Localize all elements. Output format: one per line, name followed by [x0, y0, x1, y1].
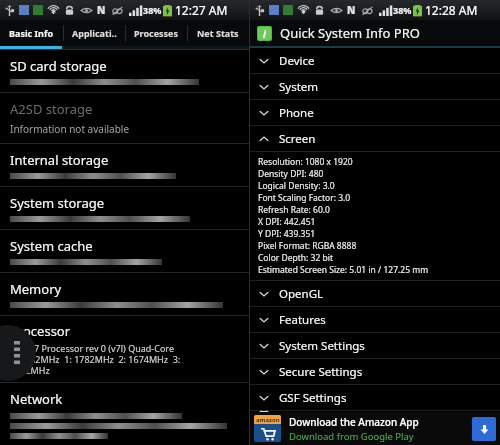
staticText: Color Depth: 32 bit [258, 252, 334, 264]
staticText: Device [279, 53, 315, 69]
staticText: i [263, 27, 266, 40]
button[interactable]: SD card storage [0, 50, 249, 92]
button[interactable]: System [250, 74, 500, 99]
button[interactable]: OpenGL [250, 281, 500, 306]
staticText: Features [279, 312, 326, 328]
button[interactable]: System Settings [250, 333, 500, 358]
staticText: Processes [134, 27, 179, 39]
staticText: ARMv7 Processor rev 0 (v7l) Quad-Core 0:… [10, 342, 181, 376]
button[interactable]: System storage [0, 187, 249, 229]
staticText: Applicati.. [72, 27, 117, 39]
staticText: 12:27 AM [175, 2, 228, 18]
staticText: 38% [393, 4, 412, 16]
button[interactable]: Basic Info [0, 20, 63, 46]
staticText: Phone [279, 105, 314, 121]
staticText: OpenGL [279, 286, 324, 302]
staticText: Memory [10, 280, 62, 298]
button[interactable]: Memory [0, 273, 249, 315]
staticText: A2SD storage [10, 100, 93, 118]
staticText: Screen [279, 131, 316, 147]
staticText: System storage [10, 194, 105, 212]
staticText: SD card storage [10, 57, 107, 75]
staticText: amazon [256, 416, 280, 424]
button[interactable]: amazon [250, 412, 500, 445]
staticText: 38% [143, 4, 162, 16]
staticText: Internal storage [10, 151, 109, 169]
button[interactable]: Secure Settings [250, 359, 500, 384]
button[interactable]: Screen [250, 126, 500, 151]
staticText: System Settings [279, 338, 365, 354]
button[interactable]: Features [250, 307, 500, 332]
staticText: Y DPI: 439.351 [258, 228, 316, 240]
button[interactable]: Device [250, 48, 500, 73]
button[interactable]: Download [472, 417, 496, 441]
button[interactable]: Applicati.. [63, 20, 125, 46]
staticText: System [279, 79, 319, 95]
staticText: N [97, 3, 106, 17]
staticText: GSF Settings [279, 390, 347, 406]
button[interactable]: VM Settings [250, 411, 500, 412]
staticText: Basic Info [9, 27, 54, 39]
staticText: Estimated Screen Size: 5.01 in / 127.25 … [258, 264, 429, 276]
button[interactable]: Network [0, 383, 249, 445]
staticText: N [347, 3, 356, 17]
staticText: Refresh Rate: 60.0 [258, 204, 330, 216]
staticText: Font Scaling Factor: 3.0 [258, 192, 351, 204]
staticText: Processor [10, 322, 71, 340]
staticText: Net Stats [197, 27, 239, 39]
staticText: Density DPI: 480 [258, 168, 324, 180]
button[interactable]: Drag handle [0, 325, 36, 381]
staticText: Download from Google Play [289, 430, 414, 443]
button[interactable]: A2SD storage [0, 93, 249, 143]
staticText: Logical Density: 3.0 [258, 180, 335, 192]
staticText: Pixel Format: RGBA 8888 [258, 240, 357, 252]
staticText: Download the Amazon App [289, 415, 419, 429]
button[interactable]: GSF Settings [250, 385, 500, 410]
staticText: 12:28 AM [425, 2, 478, 18]
staticText: X DPI: 442.451 [258, 216, 316, 228]
button[interactable]: Processor [0, 316, 249, 382]
staticText: Information not available [10, 122, 130, 136]
staticText: Resolution: 1080 x 1920 [258, 156, 353, 168]
button[interactable]: System cache [0, 230, 249, 272]
staticText: System cache [10, 237, 93, 255]
button[interactable]: Net Stats [187, 20, 249, 46]
staticText: Quick System Info PRO [280, 24, 420, 42]
staticText: Network [10, 390, 63, 408]
button[interactable]: Phone [250, 100, 500, 125]
button[interactable]: Processes [125, 20, 187, 46]
staticText: Secure Settings [279, 364, 363, 380]
button[interactable]: Internal storage [0, 144, 249, 186]
